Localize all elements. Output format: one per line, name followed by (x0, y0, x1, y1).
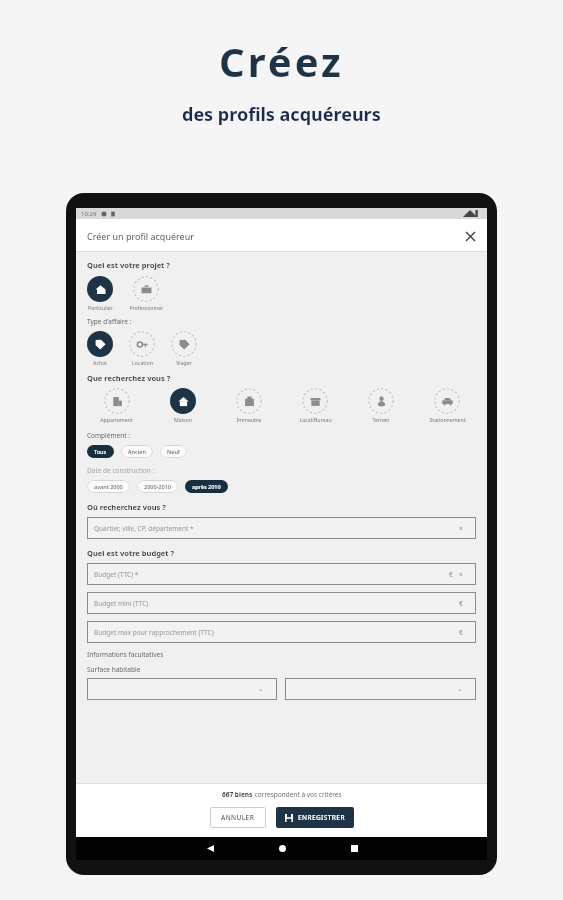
button[interactable]: après 2010 (185, 480, 228, 493)
staticText: Quel est votre projet ? (87, 260, 170, 270)
button[interactable]: Local/Bureau (286, 388, 344, 423)
button[interactable]: Immeuble (220, 388, 278, 423)
button[interactable]: Terrain (352, 388, 410, 423)
button[interactable]: Stationnement (418, 388, 476, 423)
button[interactable]: Neuf (160, 445, 187, 458)
staticText: 2000-2010 (144, 483, 171, 490)
staticText: Ancien (128, 448, 146, 455)
button[interactable]: Retour (197, 837, 223, 860)
staticText: ANNULER (221, 813, 255, 822)
staticText: Que recherchez vous ? (87, 373, 171, 383)
staticText: Stationnement (429, 416, 466, 423)
staticText: Professionnel (129, 304, 163, 311)
staticText: 10:29 (81, 210, 97, 218)
staticText: Type d'affaire : (87, 317, 132, 326)
staticText: € (459, 628, 463, 637)
button[interactable]: Achat (87, 331, 113, 366)
staticText: Maison (174, 416, 192, 423)
staticText: ⌄ (258, 685, 264, 693)
button[interactable]: Quartier, ville, CP, département * (87, 517, 476, 539)
staticText: Quel est votre budget ? (87, 548, 175, 558)
button[interactable]: Professionnel (129, 276, 163, 311)
staticText: des profils acquéreurs (182, 102, 381, 127)
button[interactable]: Fermer (461, 227, 479, 245)
staticText: Informations facultatives (87, 650, 164, 659)
button[interactable]: Location (129, 331, 155, 366)
button[interactable]: ENREGISTRER (276, 807, 354, 828)
staticText: × (459, 524, 463, 533)
staticText: Location (132, 359, 153, 366)
staticText: Budget max pour rapprochement (TTC) (94, 628, 459, 637)
staticText: ENREGISTRER (298, 813, 345, 822)
staticText: correspondent à vos critères (253, 790, 342, 799)
staticText: Complément : (87, 431, 130, 440)
staticText: Créer un profil acquéreur (87, 230, 194, 242)
staticText: avant 2000 (94, 483, 123, 490)
staticText: ⌄ (457, 685, 463, 693)
staticText: Terrain (372, 416, 390, 423)
staticText: Surface habitable (87, 665, 141, 674)
staticText: Local/Bureau (299, 416, 332, 423)
button[interactable]: Ancien (121, 445, 153, 458)
button[interactable]: Applications récentes (341, 837, 367, 860)
staticText: Budget (TTC) * (94, 570, 449, 579)
button[interactable]: Particulier (87, 276, 113, 311)
staticText: Budget mini (TTC) (94, 599, 459, 608)
staticText: Neuf (167, 448, 180, 455)
button[interactable]: 2000-2010 (137, 480, 178, 493)
button[interactable]: Budget (TTC) * (87, 563, 476, 585)
button[interactable]: avant 2000 (87, 480, 130, 493)
button[interactable]: Budget mini (TTC) (87, 592, 476, 614)
staticText: Achat (93, 359, 107, 366)
staticText: € (459, 599, 463, 608)
staticText: Créez (219, 34, 344, 88)
staticText: × (459, 570, 463, 579)
button[interactable]: Tous (87, 445, 114, 458)
staticText: Immeuble (236, 416, 262, 423)
button[interactable]: ⌄ (285, 678, 476, 700)
staticText: Particulier (88, 304, 113, 311)
button[interactable]: Appartement (87, 388, 146, 423)
staticText: Date de construction : (87, 466, 155, 475)
button[interactable]: ⌄ (87, 678, 277, 700)
button[interactable]: Viager (171, 331, 197, 366)
staticText: après 2010 (192, 483, 221, 490)
staticText: Viager (176, 359, 192, 366)
staticText: Quartier, ville, CP, département * (94, 524, 459, 533)
button[interactable]: Budget max pour rapprochement (TTC) (87, 621, 476, 643)
staticText: Appartement (100, 416, 133, 423)
staticText: Où recherchez vous ? (87, 502, 166, 512)
staticText: 667 biens (222, 790, 253, 799)
button[interactable]: Accueil (269, 837, 295, 860)
staticText: Tous (94, 448, 107, 455)
staticText: € (449, 570, 453, 579)
button[interactable]: Maison (154, 388, 212, 423)
button[interactable]: ANNULER (210, 807, 266, 828)
